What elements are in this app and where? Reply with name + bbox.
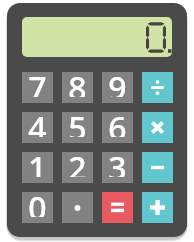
staticText: 0 <box>28 186 47 217</box>
other: Display showing 0. <box>22 17 172 57</box>
button[interactable]: 6 <box>102 112 133 143</box>
staticText: 6 <box>108 106 127 137</box>
staticText: 8 <box>68 66 87 97</box>
button[interactable]: Decimal point <box>62 192 93 223</box>
staticText: 3 <box>108 146 127 177</box>
staticText: 7 <box>28 66 47 97</box>
staticText: 9 <box>108 66 127 97</box>
button[interactable]: Plus <box>142 192 173 223</box>
button[interactable]: Multiply <box>142 112 173 143</box>
button[interactable]: 0 <box>22 192 53 223</box>
button[interactable]: 9 <box>102 72 133 103</box>
button[interactable]: 4 <box>22 112 53 143</box>
button[interactable]: Equals <box>102 192 133 223</box>
button[interactable]: Divide <box>142 72 173 103</box>
button[interactable]: 5 <box>62 112 93 143</box>
button[interactable]: 2 <box>62 152 93 183</box>
button[interactable]: Minus <box>142 152 173 183</box>
button[interactable]: 1 <box>22 152 53 183</box>
button[interactable]: 7 <box>22 72 53 103</box>
staticText: 1 <box>28 146 47 177</box>
staticText: 2 <box>68 146 87 177</box>
button[interactable]: 8 <box>62 72 93 103</box>
staticText: 4 <box>28 106 47 137</box>
staticText: 5 <box>68 106 87 137</box>
button[interactable]: 3 <box>102 152 133 183</box>
